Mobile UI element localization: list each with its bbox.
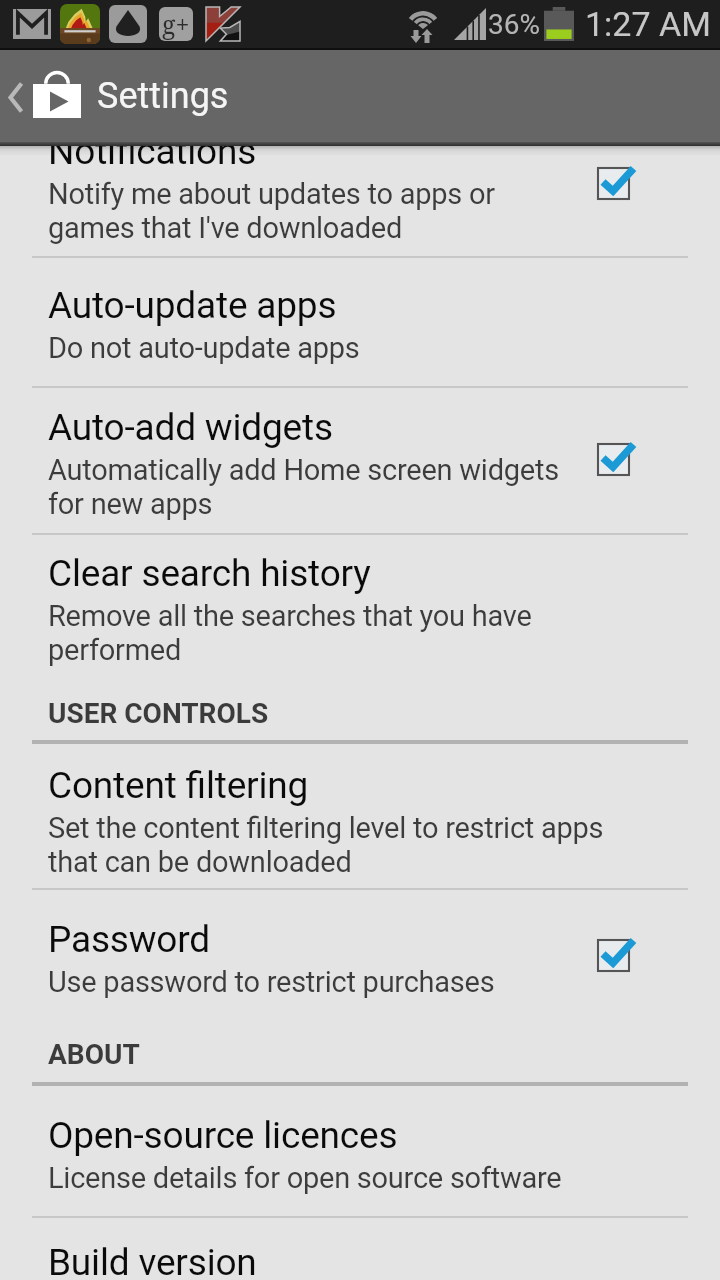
staticText: Do not auto-update apps xyxy=(48,331,360,365)
staticText: Auto-add widgets xyxy=(48,406,333,449)
staticText: Password xyxy=(48,918,210,961)
button[interactable]: Clear search history xyxy=(0,552,720,667)
staticText: Build version xyxy=(48,1241,257,1280)
other: Back xyxy=(6,82,25,113)
staticText: License details for open source software xyxy=(48,1161,562,1195)
staticText: performed xyxy=(48,633,182,667)
staticText: g+ xyxy=(162,7,190,41)
staticText: that can be downloaded xyxy=(48,845,352,879)
button[interactable]: Back xyxy=(0,50,720,142)
staticText: Set the content filtering level to restr… xyxy=(48,811,604,845)
button[interactable]: Auto-add widgets xyxy=(0,406,720,521)
staticText: Automatically add Home screen widgets xyxy=(48,453,559,487)
button[interactable]: Auto-update apps xyxy=(0,284,720,365)
staticText: Open-source licences xyxy=(48,1114,398,1157)
staticText: ABOUT xyxy=(48,1038,140,1071)
staticText: for new apps xyxy=(48,487,213,521)
staticText: Notifications xyxy=(48,130,257,173)
staticText: Content filtering xyxy=(48,764,309,807)
staticText: Clear search history xyxy=(48,552,371,595)
button[interactable]: Notifications xyxy=(0,130,720,245)
staticText: 1:27 AM xyxy=(585,4,711,44)
staticText: USER CONTROLS xyxy=(48,697,269,730)
button[interactable]: Toggle setting xyxy=(597,161,645,205)
staticText: Remove all the searches that you have xyxy=(48,599,532,633)
button[interactable]: Password xyxy=(0,918,720,999)
staticText: 36% xyxy=(488,8,540,41)
staticText: games that I've downloaded xyxy=(48,211,402,245)
staticText: Settings xyxy=(97,75,229,117)
button[interactable]: Toggle setting xyxy=(597,437,645,481)
staticText: Use password to restrict purchases xyxy=(48,965,495,999)
button[interactable]: Open-source licences xyxy=(0,1114,720,1195)
staticText: Auto-update apps xyxy=(48,284,337,327)
button[interactable]: Toggle setting xyxy=(597,933,645,977)
button[interactable]: Content filtering xyxy=(0,764,720,879)
staticText: Notify me about updates to apps or xyxy=(48,177,495,211)
button[interactable]: Build version xyxy=(0,1241,720,1280)
